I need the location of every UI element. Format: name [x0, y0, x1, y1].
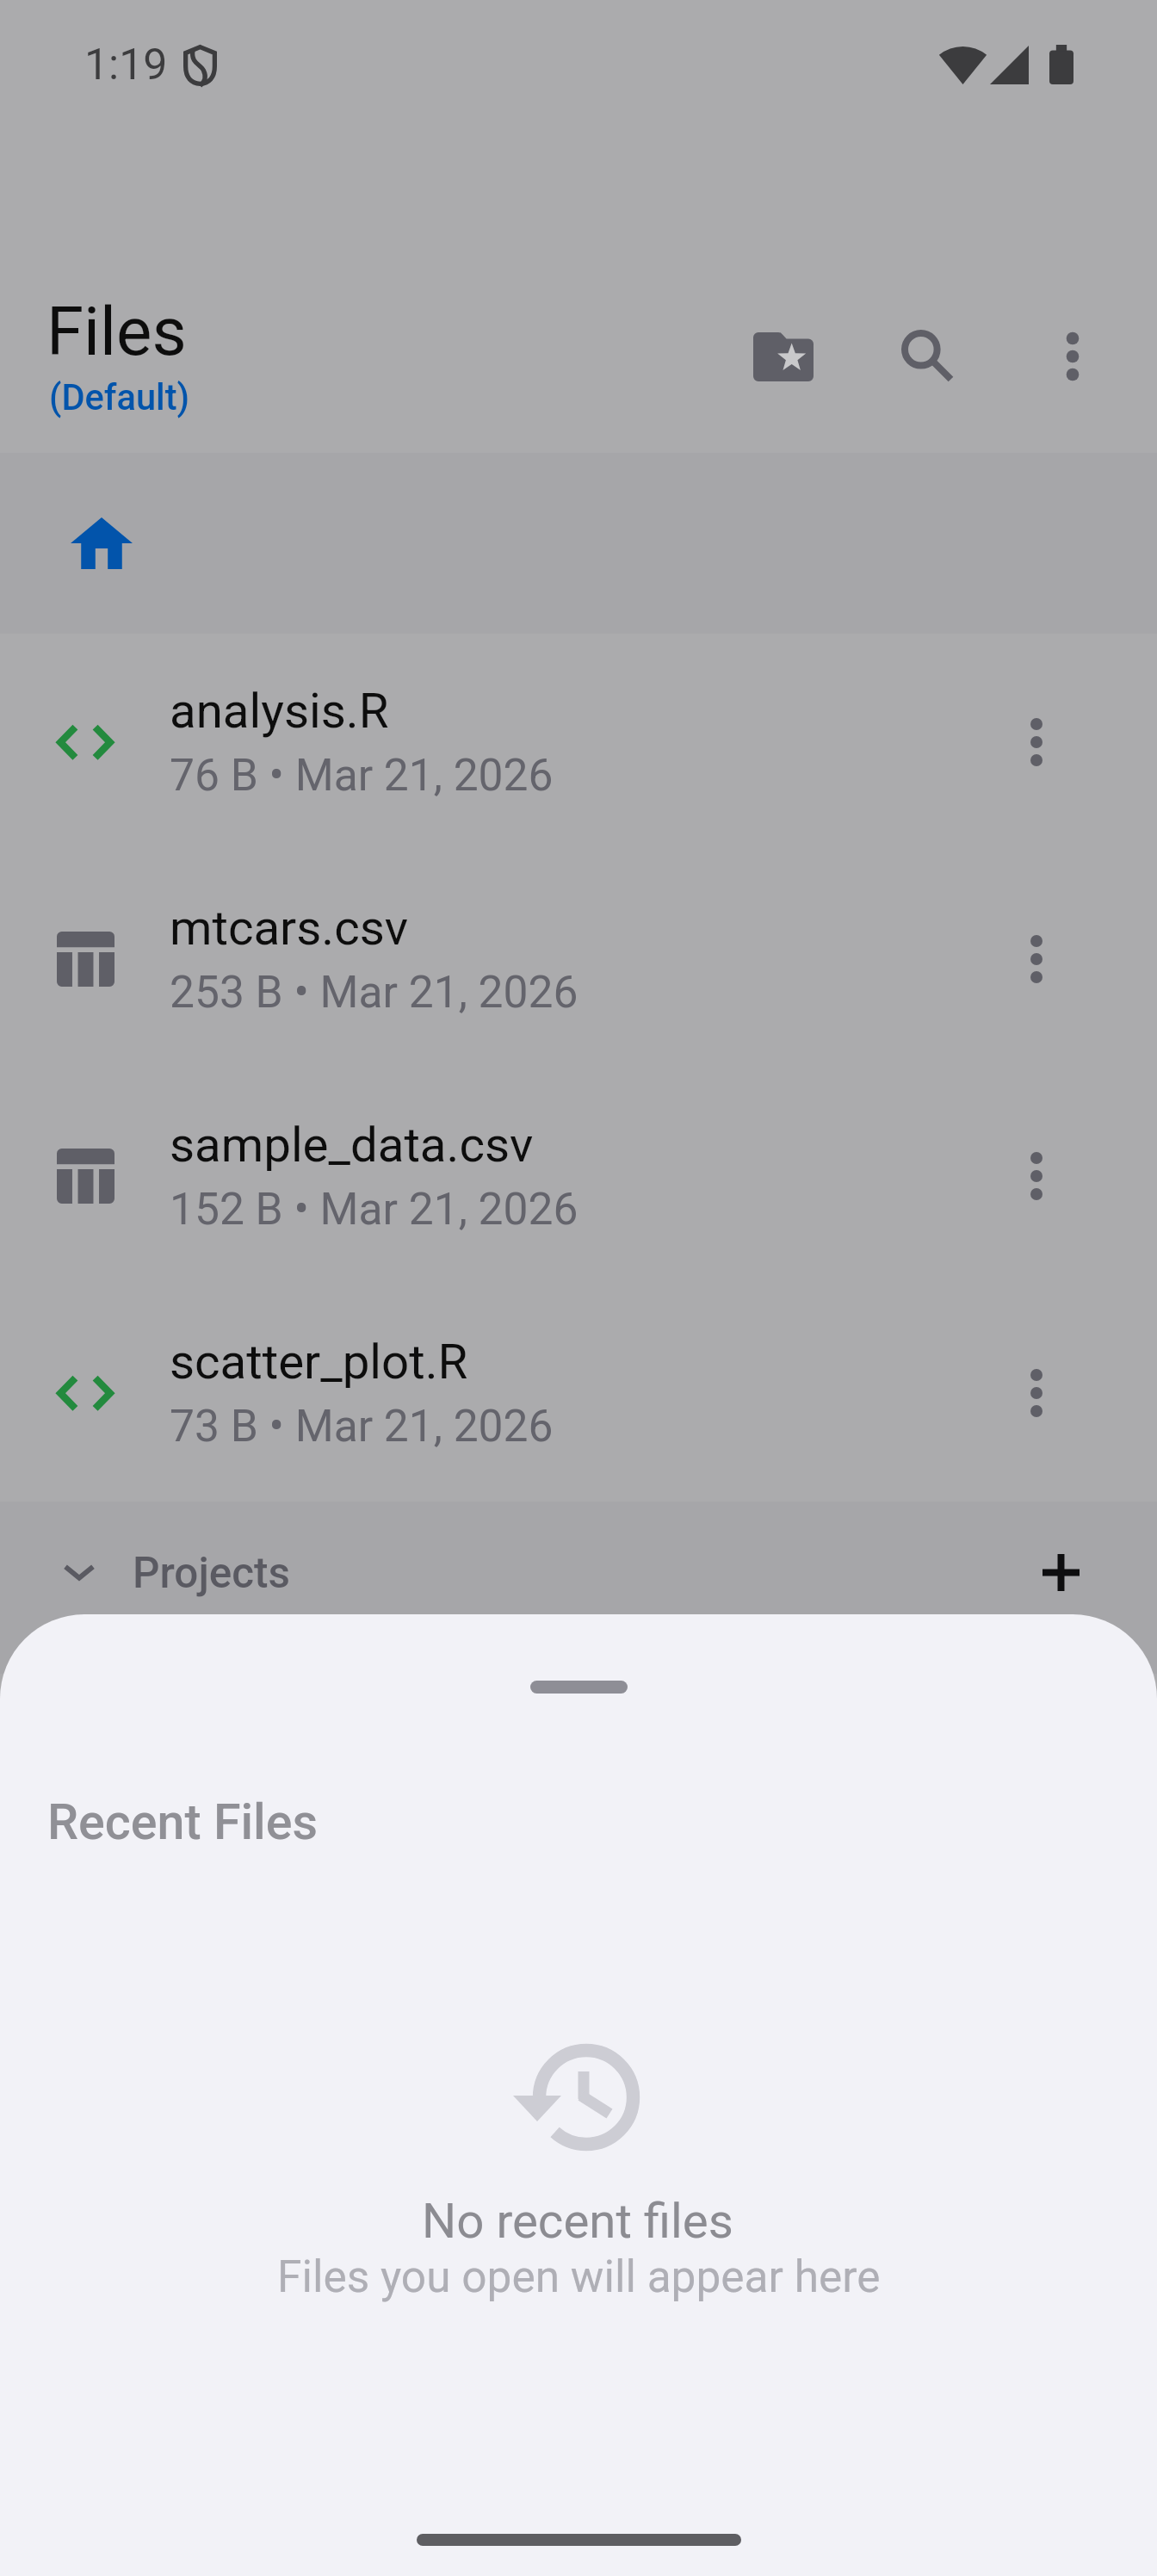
staticText: 253 B • Mar 21, 2026 [170, 966, 578, 1018]
staticText: mtcars.csv [170, 900, 409, 957]
staticText: 73 B • Mar 21, 2026 [170, 1400, 554, 1452]
button[interactable]: Search [855, 284, 999, 429]
staticText: Files [46, 293, 187, 371]
button[interactable]: Home [54, 500, 149, 586]
button[interactable]: File options [976, 634, 1097, 851]
button[interactable]: sample_data.csv [0, 1068, 1157, 1285]
staticText: scatter_plot.R [170, 1334, 468, 1390]
staticText: 152 B • Mar 21, 2026 [170, 1183, 578, 1235]
button[interactable]: analysis.R [0, 634, 1157, 851]
staticText: (Default) [49, 376, 190, 418]
staticText: sample_data.csv [170, 1117, 534, 1173]
button[interactable]: Collapse projects [40, 1533, 119, 1612]
button[interactable]: mtcars.csv [0, 851, 1157, 1068]
button[interactable]: Bookmarks [711, 284, 856, 429]
staticText: Recent Files [47, 1793, 319, 1851]
button[interactable]: File options [976, 1285, 1097, 1502]
button[interactable]: Collapse sheet [505, 1655, 652, 1719]
button[interactable]: File options [976, 851, 1097, 1068]
staticText: No recent files [422, 2193, 733, 2250]
button[interactable]: scatter_plot.R [0, 1285, 1157, 1502]
staticText: Files you open will appear here [277, 2251, 881, 2302]
button[interactable]: Add project [1021, 1533, 1100, 1612]
staticText: 76 B • Mar 21, 2026 [170, 749, 554, 801]
button[interactable]: File options [976, 1068, 1097, 1285]
button[interactable] [0, 1502, 1157, 1613]
staticText: Projects [133, 1548, 290, 1598]
button[interactable]: More options [1000, 284, 1145, 429]
staticText: analysis.R [170, 683, 389, 740]
staticText: 1:19 [84, 40, 168, 90]
